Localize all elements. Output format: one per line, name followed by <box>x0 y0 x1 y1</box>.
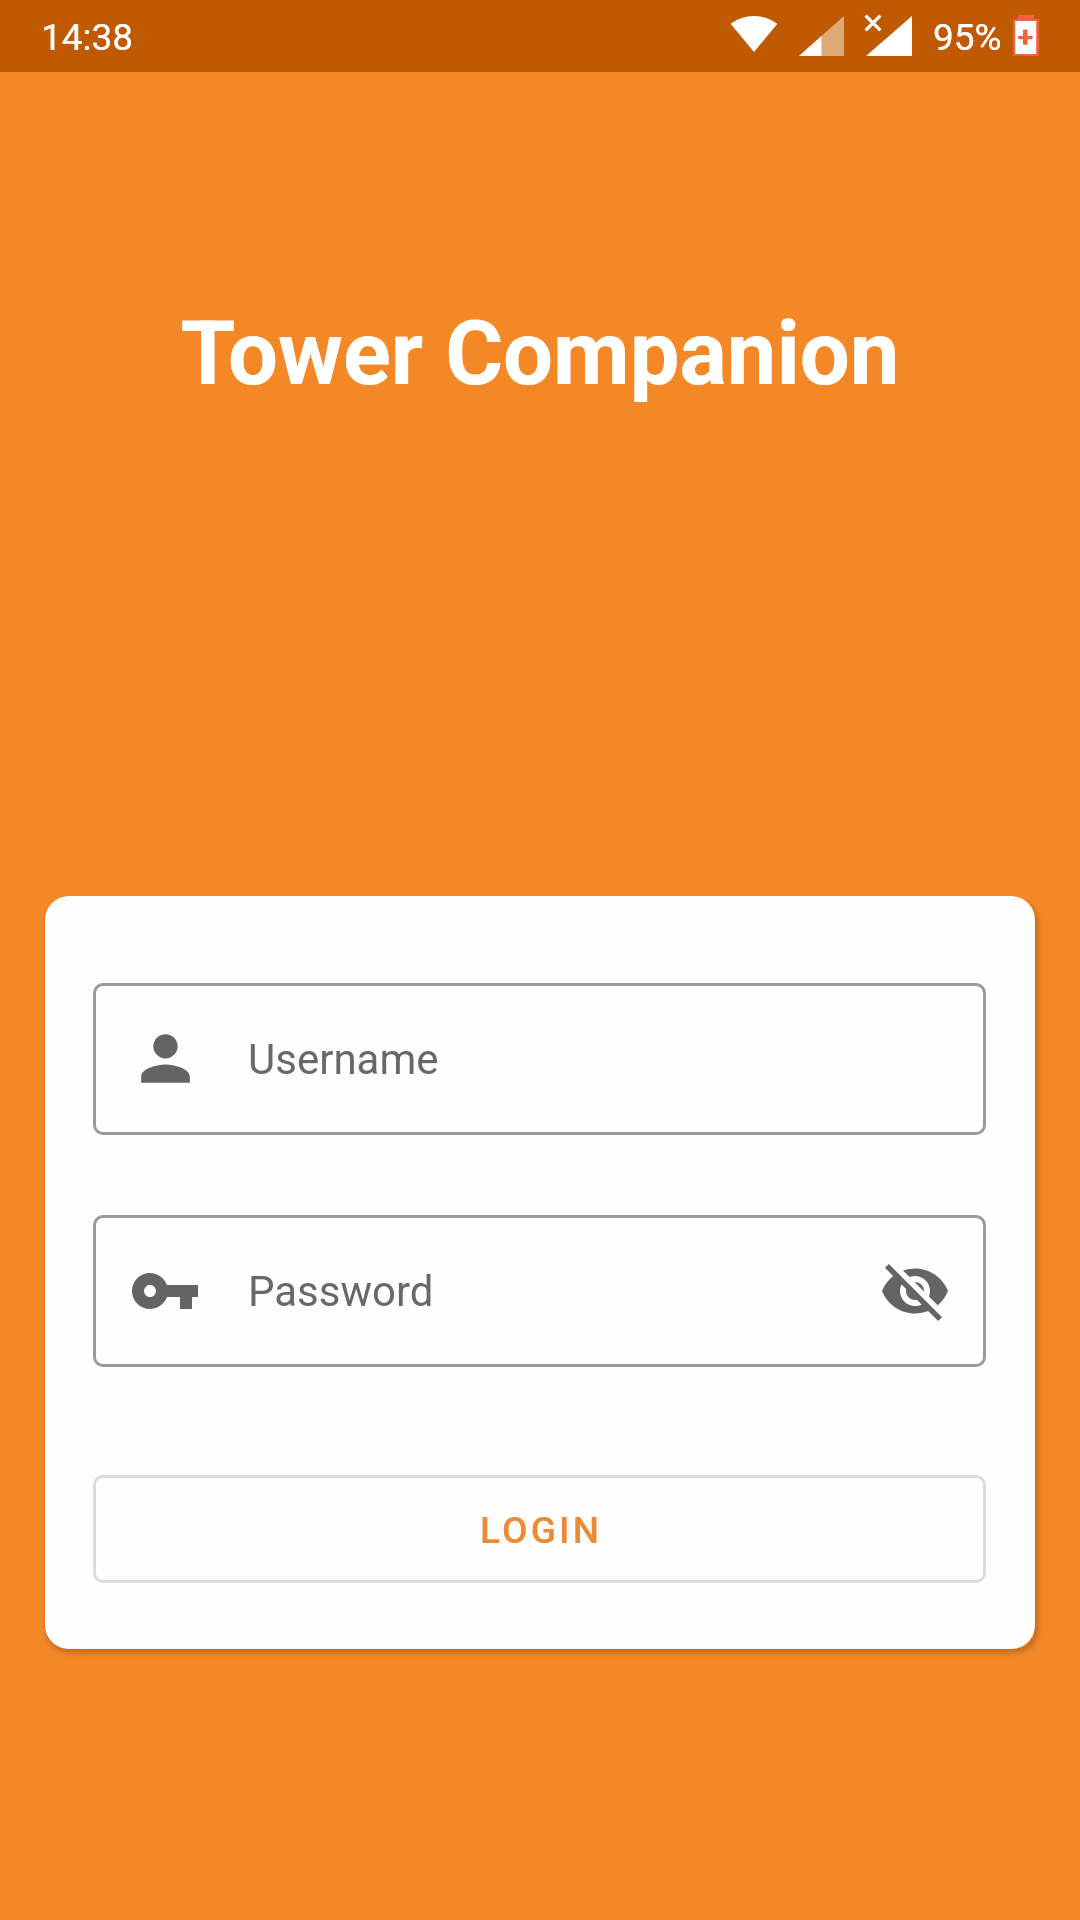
button[interactable]: Username <box>93 983 986 1135</box>
staticText: Username <box>248 1035 439 1084</box>
button[interactable]: Password <box>93 1215 986 1367</box>
button[interactable]: LOGIN <box>93 1475 986 1583</box>
staticText: 95% <box>933 16 1002 59</box>
staticText: LOGIN <box>480 1509 603 1552</box>
staticText: Password <box>248 1267 434 1316</box>
button[interactable]: Show password <box>854 1241 954 1341</box>
staticText: 14:38 <box>41 16 134 59</box>
staticText: Tower Companion <box>0 302 1080 406</box>
